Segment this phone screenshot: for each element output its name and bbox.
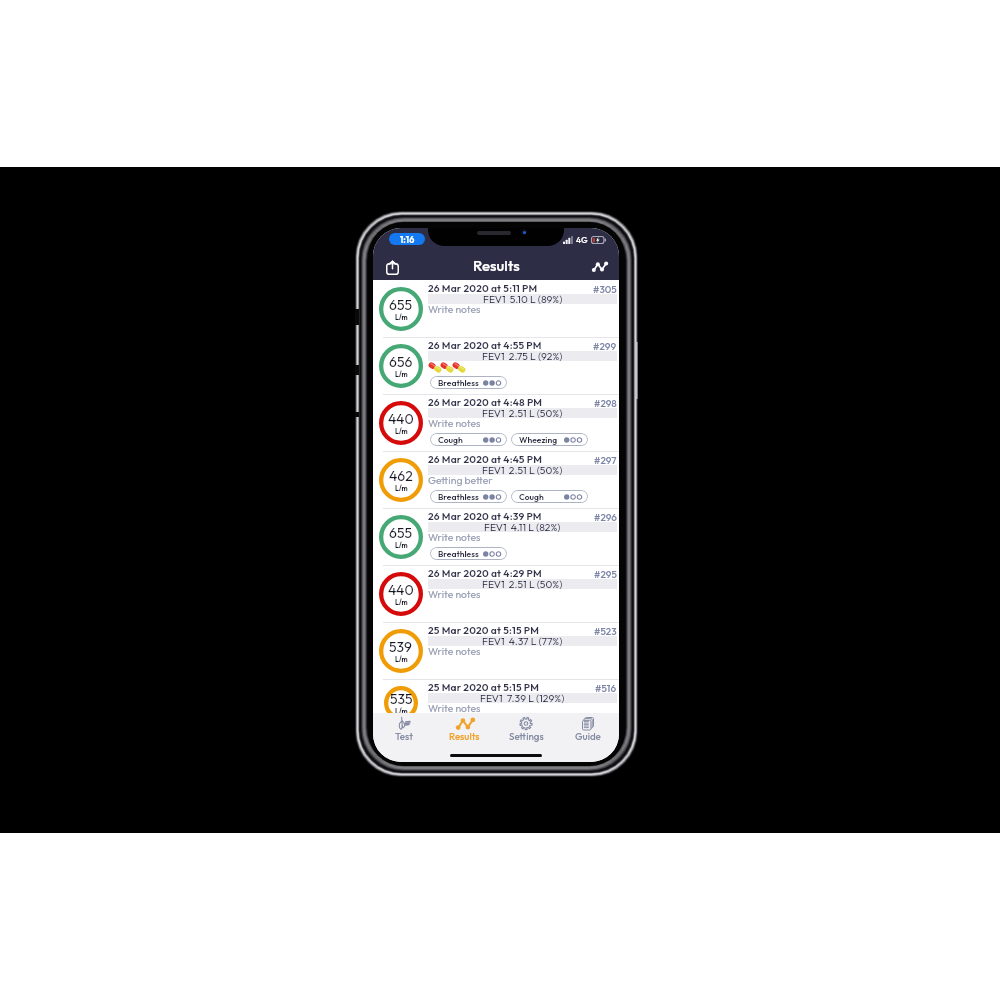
staticText: 440	[388, 410, 414, 428]
staticText: L/m	[395, 427, 408, 436]
staticText: 25 Mar 2020 at 5:15 PM	[428, 681, 539, 694]
staticText: Results	[449, 730, 480, 742]
staticText: Cough	[438, 434, 463, 445]
staticText: Breathless	[438, 377, 479, 388]
staticText: FEV1 5.10 L (89%)	[483, 293, 563, 305]
button[interactable]: Share	[379, 254, 405, 280]
staticText: #299	[593, 340, 617, 353]
button[interactable]: 655	[373, 280, 619, 337]
staticText: 655	[389, 296, 413, 314]
staticText: 4G	[576, 234, 588, 245]
staticText: 26 Mar 2020 at 4:29 PM	[428, 567, 542, 580]
staticText: 1:16	[400, 234, 415, 245]
staticText: FEV1 4.37 L (77%)	[482, 635, 563, 647]
staticText: L/m	[395, 370, 408, 379]
button[interactable]: Breathless	[430, 376, 507, 389]
staticText: Write notes	[428, 702, 481, 715]
button[interactable]: Test	[373, 713, 434, 751]
staticText: L/m	[395, 598, 408, 607]
staticText: Write notes	[428, 645, 481, 658]
staticText: Guide	[575, 730, 601, 742]
staticText: Breathless	[438, 491, 479, 502]
button[interactable]: Results	[434, 713, 495, 751]
button[interactable]: Breathless	[430, 547, 507, 560]
staticText: #297	[594, 454, 617, 467]
staticText: FEV1 2.51 L (50%)	[482, 464, 563, 476]
staticText: 26 Mar 2020 at 4:39 PM	[428, 510, 542, 523]
staticText: 656	[389, 353, 413, 371]
staticText: Settings	[509, 730, 544, 742]
staticText: 539	[389, 638, 413, 656]
button[interactable]: 535	[373, 679, 619, 713]
staticText: L/m	[395, 707, 408, 716]
button[interactable]: 462	[373, 451, 619, 508]
staticText: 26 Mar 2020 at 4:45 PM	[428, 453, 542, 466]
staticText: Write notes	[428, 588, 481, 601]
staticText: FEV1 4.11 L (82%)	[484, 521, 561, 533]
staticText: L/m	[395, 313, 408, 322]
staticText: #516	[595, 682, 617, 695]
staticText: 440	[388, 581, 414, 599]
staticText: #523	[594, 625, 617, 638]
staticText: L/m	[395, 655, 408, 664]
staticText: 26 Mar 2020 at 5:11 PM	[428, 282, 538, 295]
staticText: Cough	[519, 491, 544, 502]
staticText: 535	[390, 690, 413, 708]
button[interactable]: 655	[373, 508, 619, 565]
staticText: FEV1 7.39 L (129%)	[480, 692, 565, 704]
button[interactable]: Wheezing	[511, 433, 588, 446]
staticText: FEV1 2.75 L (92%)	[482, 350, 563, 362]
staticText: FEV1 2.51 L (50%)	[482, 407, 563, 419]
button[interactable]: Chart	[587, 254, 613, 280]
button[interactable]: Cough	[430, 433, 507, 446]
staticText: Breathless	[438, 548, 479, 559]
button[interactable]: Cough	[511, 490, 588, 503]
staticText: Wheezing	[519, 434, 558, 445]
staticText: 655	[389, 524, 413, 542]
button[interactable]: 440	[373, 565, 619, 622]
staticText: 462	[389, 467, 413, 485]
staticText: Write notes	[428, 531, 481, 544]
button[interactable]: Settings	[495, 713, 557, 751]
staticText: 25 Mar 2020 at 5:15 PM	[428, 624, 539, 637]
staticText: Test	[395, 730, 413, 742]
staticText: 26 Mar 2020 at 4:48 PM	[428, 396, 543, 409]
staticText: #298	[594, 397, 617, 410]
staticText: L/m	[395, 484, 408, 493]
staticText: Write notes	[428, 417, 481, 430]
staticText: Results	[473, 256, 520, 275]
button[interactable]: Breathless	[430, 490, 507, 503]
staticText: FEV1 2.51 L (50%)	[482, 578, 563, 590]
staticText: #296	[594, 511, 617, 524]
button[interactable]: Guide	[557, 713, 619, 751]
button[interactable]: 656	[373, 337, 619, 394]
button[interactable]: 539	[373, 622, 619, 679]
staticText: #295	[594, 568, 617, 581]
staticText: 26 Mar 2020 at 4:55 PM	[428, 339, 542, 352]
button[interactable]: 440	[373, 394, 619, 451]
staticText: Write notes	[428, 303, 481, 316]
staticText: L/m	[395, 541, 408, 550]
staticText: Getting better	[428, 474, 493, 487]
staticText: #305	[593, 283, 617, 296]
